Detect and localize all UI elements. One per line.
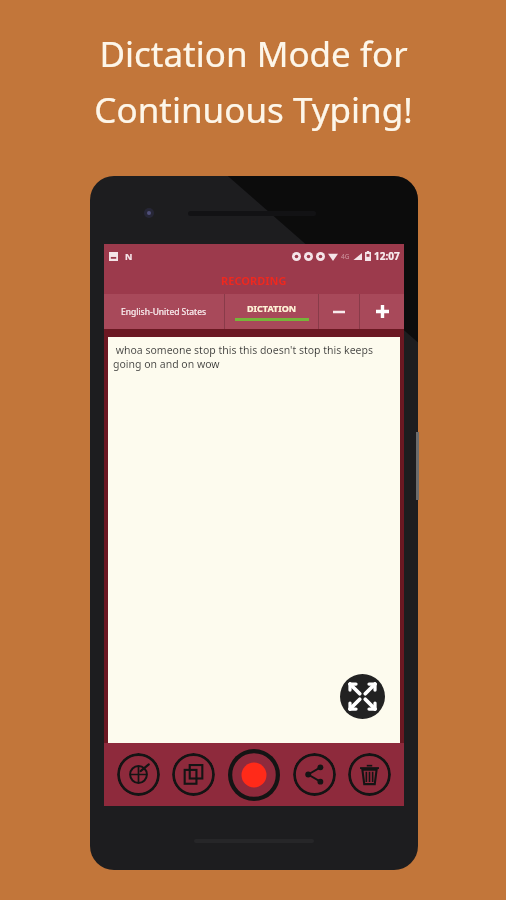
staticText: whoa someone stop this this doesn't stop… [113,343,390,371]
button[interactable]: Increase [360,294,404,329]
button[interactable]: DICTATION [225,294,318,329]
button[interactable]: Record [228,749,280,801]
staticText: 4G [341,252,350,261]
staticText: 12:07 [374,249,400,263]
staticText: N [125,250,133,262]
button[interactable]: Share [293,753,336,796]
staticText: English-United States [121,306,207,318]
button[interactable]: Copy [172,753,215,796]
button[interactable]: English-United States [104,294,224,329]
staticText: Dictation Mode for [99,30,408,78]
staticText: RECORDING [221,273,287,288]
staticText: DICTATION [247,302,297,314]
button[interactable]: Translate [117,753,160,796]
staticText: Continuous Typing! [94,86,413,134]
button[interactable]: Exit full screen [340,674,385,719]
button[interactable]: Delete [348,753,391,796]
button[interactable]: Decrease [319,294,359,329]
